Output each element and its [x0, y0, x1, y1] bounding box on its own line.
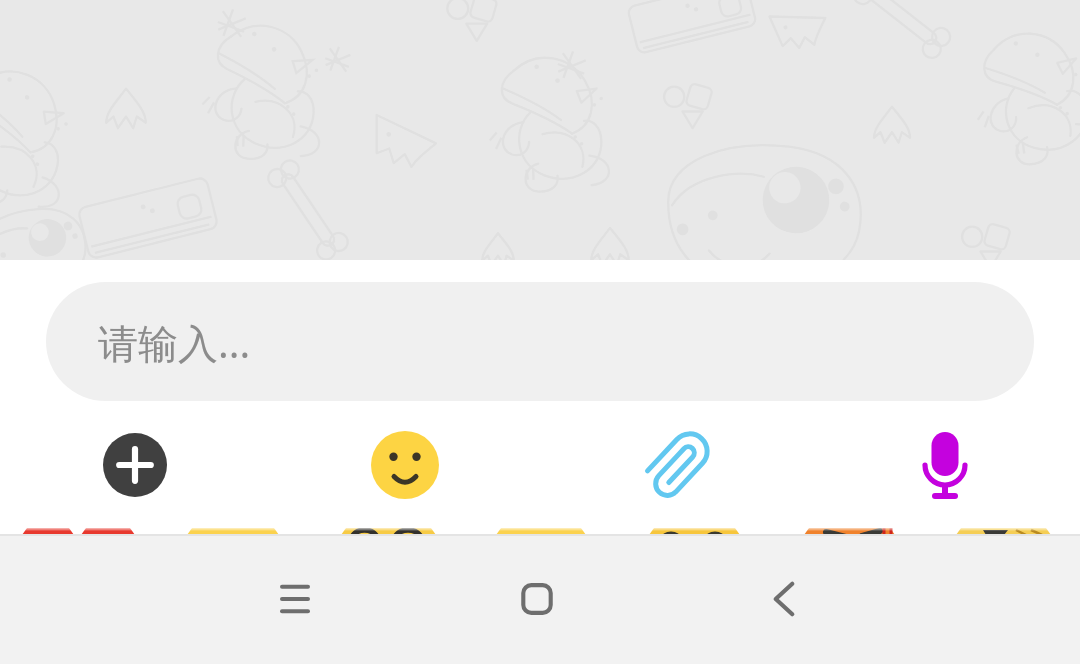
staticText: 请输入... — [98, 315, 251, 370]
button[interactable]: Emoji — [270, 415, 540, 515]
button[interactable]: Add more — [0, 415, 270, 515]
button[interactable]: Recent apps — [255, 559, 335, 639]
button[interactable]: Voice message — [810, 415, 1080, 515]
button[interactable]: 请输入... — [46, 282, 1034, 401]
button[interactable]: Back — [744, 559, 824, 639]
button[interactable]: Home — [497, 559, 577, 639]
button[interactable] — [0, 528, 1080, 534]
button[interactable]: Attach file — [540, 415, 810, 515]
